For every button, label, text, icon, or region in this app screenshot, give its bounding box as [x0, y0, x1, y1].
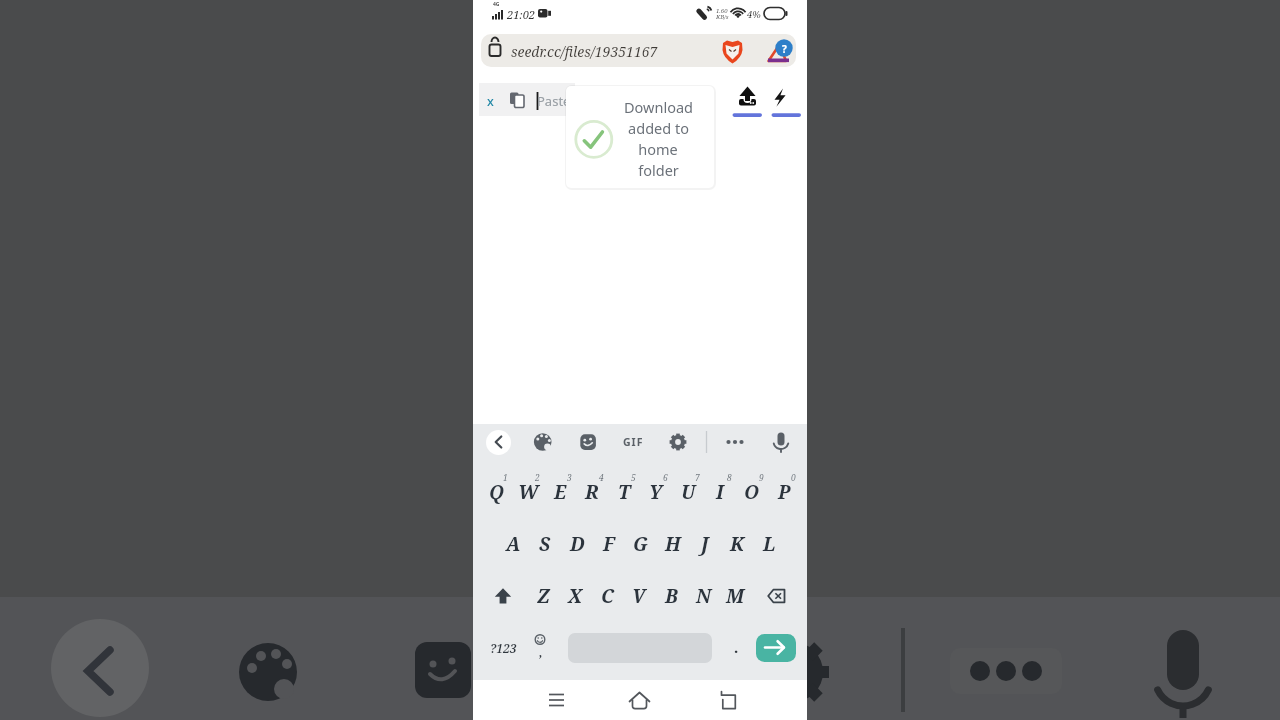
staticText: Q: [489, 479, 504, 505]
staticText: 4%: [747, 8, 761, 21]
button[interactable]: ,: [535, 643, 547, 659]
button[interactable]: [479, 83, 575, 116]
staticText: C: [601, 583, 614, 609]
button[interactable]: G: [626, 530, 656, 558]
staticText: ,: [539, 643, 543, 659]
button[interactable]: [623, 684, 655, 716]
staticText: 21:02: [507, 7, 535, 22]
button[interactable]: [756, 634, 796, 662]
button[interactable]: ?123: [486, 635, 520, 661]
staticText: U: [681, 479, 696, 505]
staticText: ?: [782, 42, 787, 54]
staticText: W: [518, 479, 539, 505]
staticText: L: [763, 531, 776, 557]
staticText: F: [603, 531, 615, 557]
button[interactable]: D: [562, 530, 592, 558]
staticText: P: [778, 479, 791, 505]
staticText: 2: [535, 472, 540, 484]
button[interactable]: X: [560, 582, 590, 610]
staticText: GIF: [623, 435, 644, 449]
button[interactable]: W: [513, 478, 543, 506]
staticText: A: [506, 531, 521, 557]
button[interactable]: C: [592, 582, 622, 610]
staticText: 4G: [493, 1, 500, 8]
staticText: D: [570, 531, 585, 557]
button[interactable]: Y: [641, 478, 671, 506]
button[interactable]: O: [737, 478, 767, 506]
staticText: Download: [624, 97, 693, 117]
staticText: x: [487, 93, 494, 110]
button[interactable]: [768, 84, 804, 118]
staticText: ?123: [490, 640, 517, 656]
staticText: 3: [567, 472, 572, 484]
button[interactable]: Z: [528, 582, 558, 610]
button[interactable]: B: [656, 582, 686, 610]
button[interactable]: M: [720, 582, 750, 610]
staticText: Paste: [537, 92, 571, 110]
button[interactable]: [712, 684, 744, 716]
button[interactable]: N: [688, 582, 718, 610]
button[interactable]: T: [609, 478, 639, 506]
button[interactable]: .: [729, 637, 743, 657]
staticText: I: [716, 479, 724, 505]
staticText: 1.60: [716, 7, 728, 14]
staticText: O: [744, 479, 760, 505]
button[interactable]: R: [577, 478, 607, 506]
staticText: G: [633, 531, 649, 557]
staticText: 7: [695, 472, 700, 484]
staticText: Y: [649, 479, 663, 505]
staticText: 4: [599, 472, 604, 484]
button[interactable]: [481, 34, 796, 67]
staticText: folder: [638, 160, 679, 180]
staticText: T: [618, 479, 631, 505]
staticText: K: [730, 531, 745, 557]
button[interactable]: [729, 84, 765, 118]
staticText: home: [638, 139, 678, 159]
button[interactable]: A: [498, 530, 528, 558]
staticText: H: [665, 531, 681, 557]
staticText: X: [568, 583, 582, 609]
staticText: KB/s: [716, 13, 729, 20]
staticText: E: [554, 479, 567, 505]
staticText: 9: [759, 472, 764, 484]
button[interactable]: U: [673, 478, 703, 506]
button[interactable]: V: [624, 582, 654, 610]
staticText: R: [585, 479, 599, 505]
button[interactable]: x: [480, 91, 500, 111]
staticText: M: [726, 583, 745, 609]
staticText: J: [701, 531, 709, 557]
staticText: .: [734, 637, 739, 657]
staticText: 1: [503, 472, 508, 484]
button[interactable]: S: [530, 530, 560, 558]
button[interactable]: L: [754, 530, 784, 558]
button[interactable]: I: [705, 478, 735, 506]
button[interactable]: E: [545, 478, 575, 506]
staticText: 8: [727, 472, 732, 484]
staticText: B: [665, 583, 678, 609]
button[interactable]: H: [658, 530, 688, 558]
button[interactable]: [486, 430, 511, 455]
staticText: S: [539, 531, 551, 557]
staticText: 6: [663, 472, 668, 484]
staticText: seedr.cc/files/19351167: [511, 42, 658, 61]
staticText: V: [632, 583, 646, 609]
staticText: N: [696, 583, 711, 609]
staticText: 5: [631, 472, 636, 484]
button[interactable]: F: [594, 530, 624, 558]
button[interactable]: K: [722, 530, 752, 558]
button[interactable]: GIF: [617, 432, 649, 452]
button[interactable]: Q: [481, 478, 511, 506]
staticText: 0: [791, 472, 796, 484]
staticText: added to: [628, 118, 689, 138]
button[interactable]: J: [690, 530, 720, 558]
button[interactable]: [541, 684, 573, 716]
staticText: Z: [537, 583, 550, 609]
button[interactable]: P: [769, 478, 799, 506]
